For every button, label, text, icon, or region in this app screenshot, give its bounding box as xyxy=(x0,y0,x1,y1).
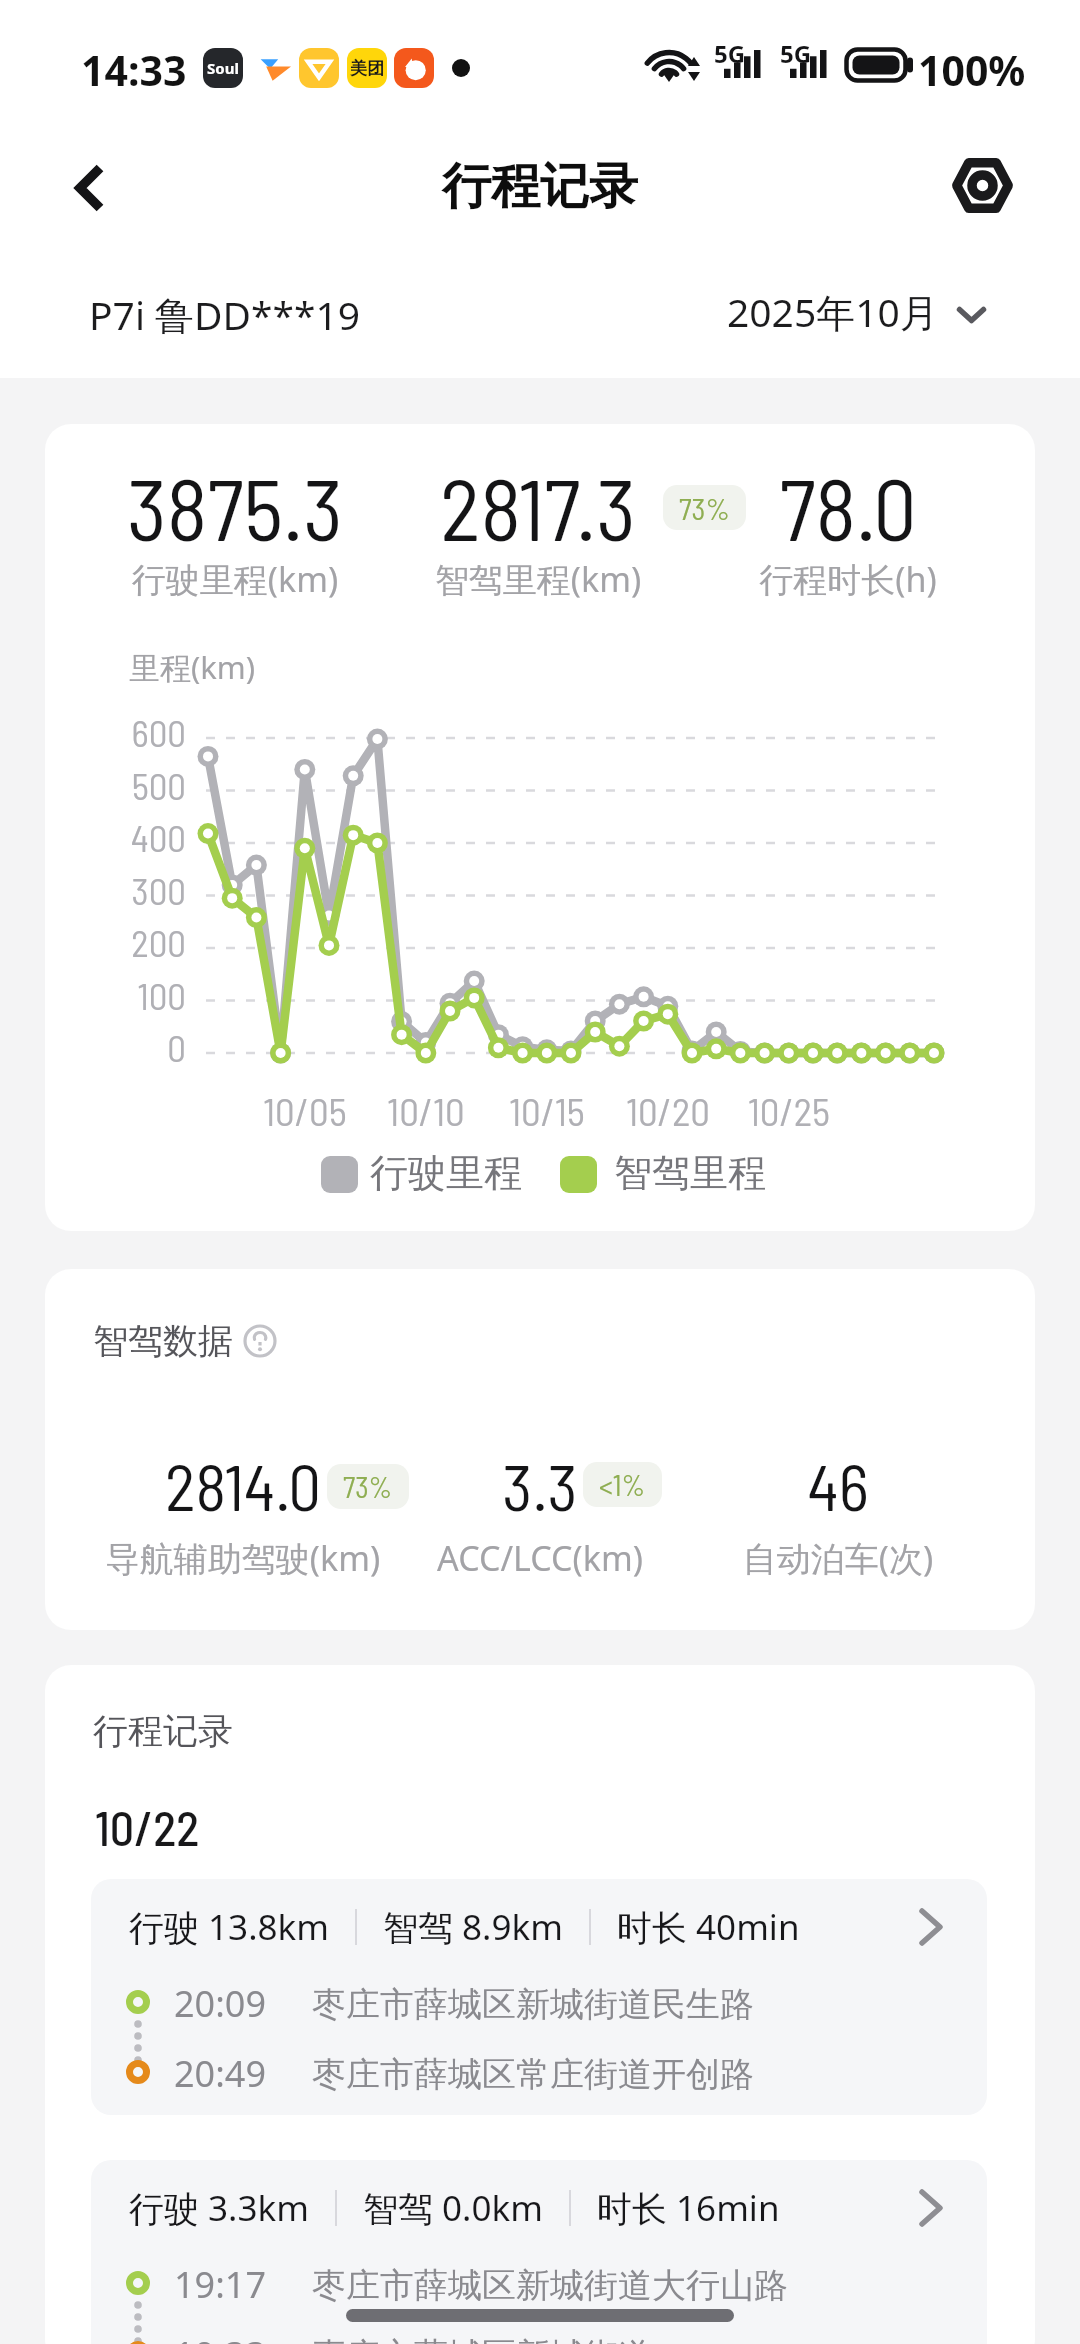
staticText: 智驾 0.0km xyxy=(363,2184,543,2232)
staticText: 20:09 xyxy=(174,1979,267,2028)
staticText: 10/25 xyxy=(639,1087,939,1134)
staticText: 10/10 xyxy=(276,1087,576,1134)
staticText: 73% xyxy=(343,1469,393,1504)
staticText: 10/20 xyxy=(518,1087,818,1134)
staticText: 5G xyxy=(714,37,746,70)
staticText: 300 xyxy=(45,868,186,912)
staticText: 0 xyxy=(45,1025,186,1069)
staticText: 100 xyxy=(45,973,186,1017)
staticText: 500 xyxy=(45,763,186,807)
staticText: 行驶 3.3km xyxy=(129,2184,309,2232)
staticText: 自动泊车(次) xyxy=(538,1535,1035,1581)
staticText: 行驶里程 xyxy=(370,1149,522,1197)
staticText: 导航辅助驾驶(km) xyxy=(45,1535,543,1581)
staticText: 78.0 xyxy=(548,455,1035,558)
staticText: 2025年10月 xyxy=(727,285,939,338)
staticText: 枣庄市薛城区新城街道大行山路 xyxy=(312,2264,788,2307)
staticText: 时长 16min xyxy=(597,2184,780,2232)
staticText: 10/22 xyxy=(95,1798,200,1856)
staticText: 美团 xyxy=(350,58,384,79)
button[interactable]: Back xyxy=(42,140,138,236)
staticText: 行程时长(h) xyxy=(548,556,1035,602)
staticText: 600 xyxy=(45,710,186,754)
staticText: 智驾里程 xyxy=(614,1149,766,1197)
button[interactable]: Settings xyxy=(934,140,1030,230)
staticText: 枣庄市薛城区新城街道民生路 xyxy=(312,1983,754,2026)
button[interactable]: 行驶 3.3km xyxy=(91,2160,987,2344)
staticText: 20:49 xyxy=(174,2049,267,2098)
staticText: 100% xyxy=(918,42,1026,98)
staticText: 里程(km) xyxy=(129,646,256,688)
staticText: <1% xyxy=(599,1467,646,1502)
staticText: Soul xyxy=(207,58,239,78)
staticText: 枣庄市薛城区新城街道 xyxy=(312,2334,652,2344)
staticText: 10/05 xyxy=(155,1087,455,1134)
button[interactable]: 行驶 13.8km xyxy=(91,1879,987,2115)
staticText: 19:33 xyxy=(174,2330,267,2344)
staticText: 2814.0 xyxy=(45,1446,543,1524)
staticText: 行驶里程(km) xyxy=(45,556,535,602)
staticText: 14:33 xyxy=(81,42,187,98)
staticText: 枣庄市薛城区常庄街道开创路 xyxy=(312,2053,754,2096)
staticText: 2817.3 xyxy=(238,455,838,558)
staticText: 3875.3 xyxy=(45,455,535,558)
staticText: 400 xyxy=(45,815,186,859)
staticText: 智驾数据 xyxy=(93,1319,233,1363)
staticText: 10/15 xyxy=(397,1087,697,1134)
staticText: 行驶 13.8km xyxy=(129,1903,329,1951)
button[interactable]: 2025年10月 xyxy=(727,285,986,338)
staticText: 3.3 xyxy=(240,1446,840,1524)
staticText: 时长 40min xyxy=(617,1903,800,1951)
staticText: 行程记录 xyxy=(442,156,638,218)
staticText: ACC/LCC(km) xyxy=(240,1535,840,1581)
staticText: 5G xyxy=(780,37,812,70)
staticText: 46 xyxy=(538,1446,1035,1524)
staticText: 行程记录 xyxy=(93,1709,233,1753)
staticText: 200 xyxy=(45,920,186,964)
staticText: 19:17 xyxy=(174,2260,267,2309)
staticText: 73% xyxy=(679,490,730,526)
staticText: P7i 鲁DD***19 xyxy=(89,288,361,341)
staticText: 智驾里程(km) xyxy=(238,556,838,602)
staticText: 智驾 8.9km xyxy=(383,1903,563,1951)
